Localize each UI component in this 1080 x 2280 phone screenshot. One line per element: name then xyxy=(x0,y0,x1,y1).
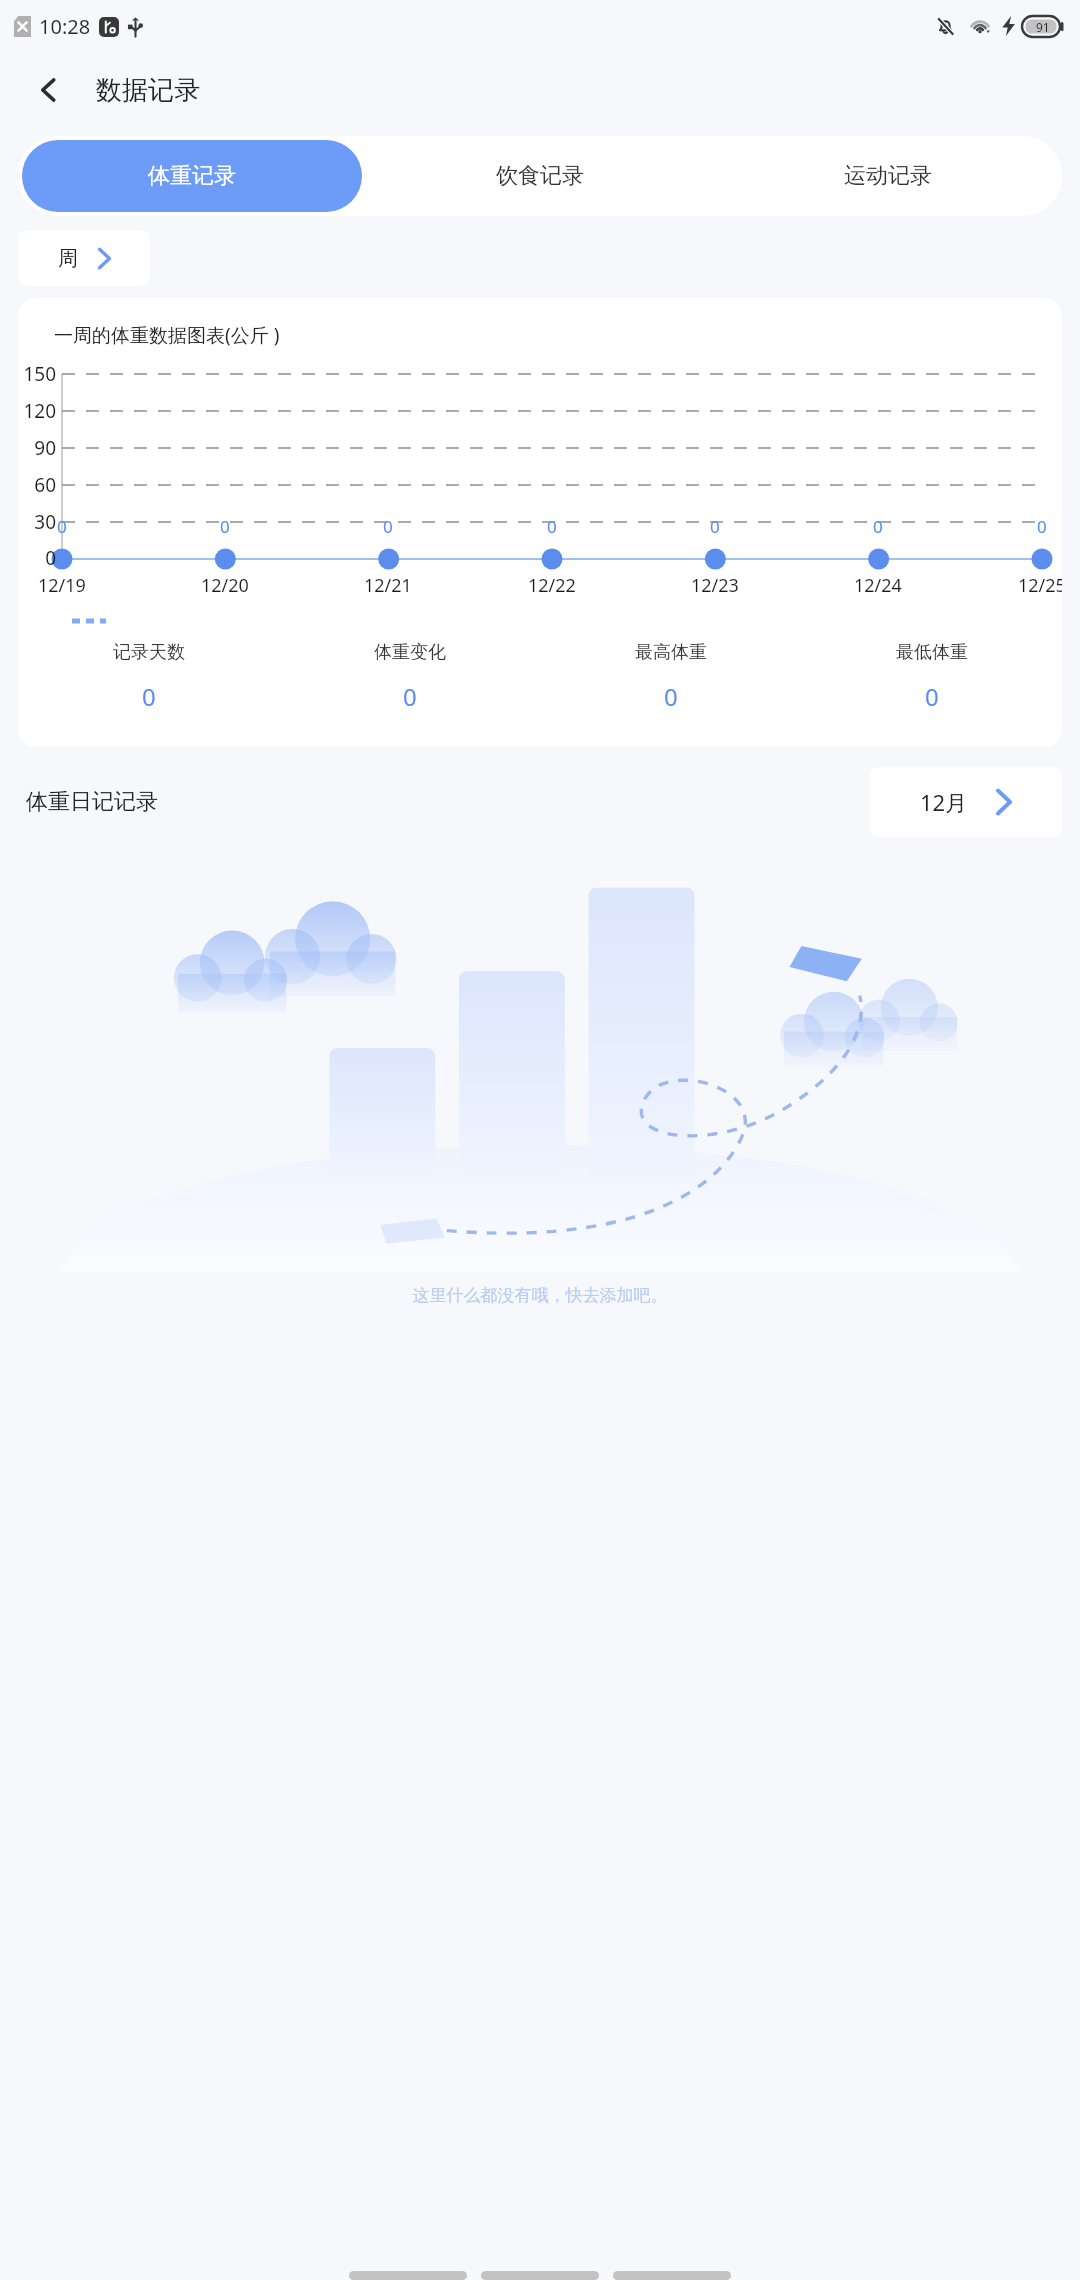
staticText: 一周的体重数据图表(公斤 ) xyxy=(54,322,280,348)
staticText: 最高体重 xyxy=(635,641,707,664)
staticText: 12/19 xyxy=(38,573,86,598)
staticText: 12月 xyxy=(920,787,968,817)
staticText: 0 xyxy=(142,680,156,713)
staticText: 周 xyxy=(58,246,78,271)
staticText: 12/23 xyxy=(691,573,739,598)
staticText: 90 xyxy=(18,435,56,461)
staticText: 0 xyxy=(873,515,883,538)
staticText: 12/22 xyxy=(528,573,576,598)
staticText: 60 xyxy=(18,472,56,498)
staticText: 0 xyxy=(1037,515,1047,538)
staticText: 记录天数 xyxy=(113,641,185,664)
staticText: 0 xyxy=(925,680,939,713)
staticText: 这里什么都没有哦，快去添加吧。 xyxy=(0,1285,1080,1306)
staticText: 0 xyxy=(383,515,393,538)
button[interactable]: 主页 xyxy=(481,2271,599,2280)
staticText: 12/25 xyxy=(1018,573,1062,598)
staticText: 0 xyxy=(664,680,678,713)
staticText: 饮食记录 xyxy=(496,162,584,190)
button[interactable]: 体重记录 xyxy=(22,140,362,212)
staticText: 0 xyxy=(710,515,720,538)
staticText: 最低体重 xyxy=(896,641,968,664)
staticText: 运动记录 xyxy=(844,162,932,190)
staticText: 120 xyxy=(18,398,56,424)
staticText: 0 xyxy=(403,680,417,713)
staticText: 0 xyxy=(18,545,56,571)
staticText: 体重记录 xyxy=(148,162,236,190)
staticText: 数据记录 xyxy=(96,74,200,107)
staticText: 0 xyxy=(547,515,557,538)
button[interactable]: 返回 xyxy=(613,2271,731,2280)
staticText: 体重日记记录 xyxy=(26,788,158,816)
button[interactable]: 12月 xyxy=(870,767,1062,837)
button[interactable]: 周 xyxy=(18,230,150,286)
button[interactable]: 返回 xyxy=(22,63,76,117)
staticText: 0 xyxy=(57,515,67,538)
staticText: 0 xyxy=(220,515,230,538)
staticText: 体重变化 xyxy=(374,641,446,664)
staticText: 12/20 xyxy=(201,573,249,598)
staticText: 30 xyxy=(18,509,56,535)
staticText: 12/24 xyxy=(854,573,902,598)
button[interactable]: 运动记录 xyxy=(714,136,1062,216)
staticText: 91 xyxy=(1036,19,1050,35)
staticText: 150 xyxy=(18,361,56,387)
staticText: 12/21 xyxy=(364,573,412,598)
staticText: 10:28 xyxy=(39,13,91,40)
button[interactable]: 最近任务 xyxy=(349,2271,467,2280)
button[interactable]: 饮食记录 xyxy=(366,136,714,216)
